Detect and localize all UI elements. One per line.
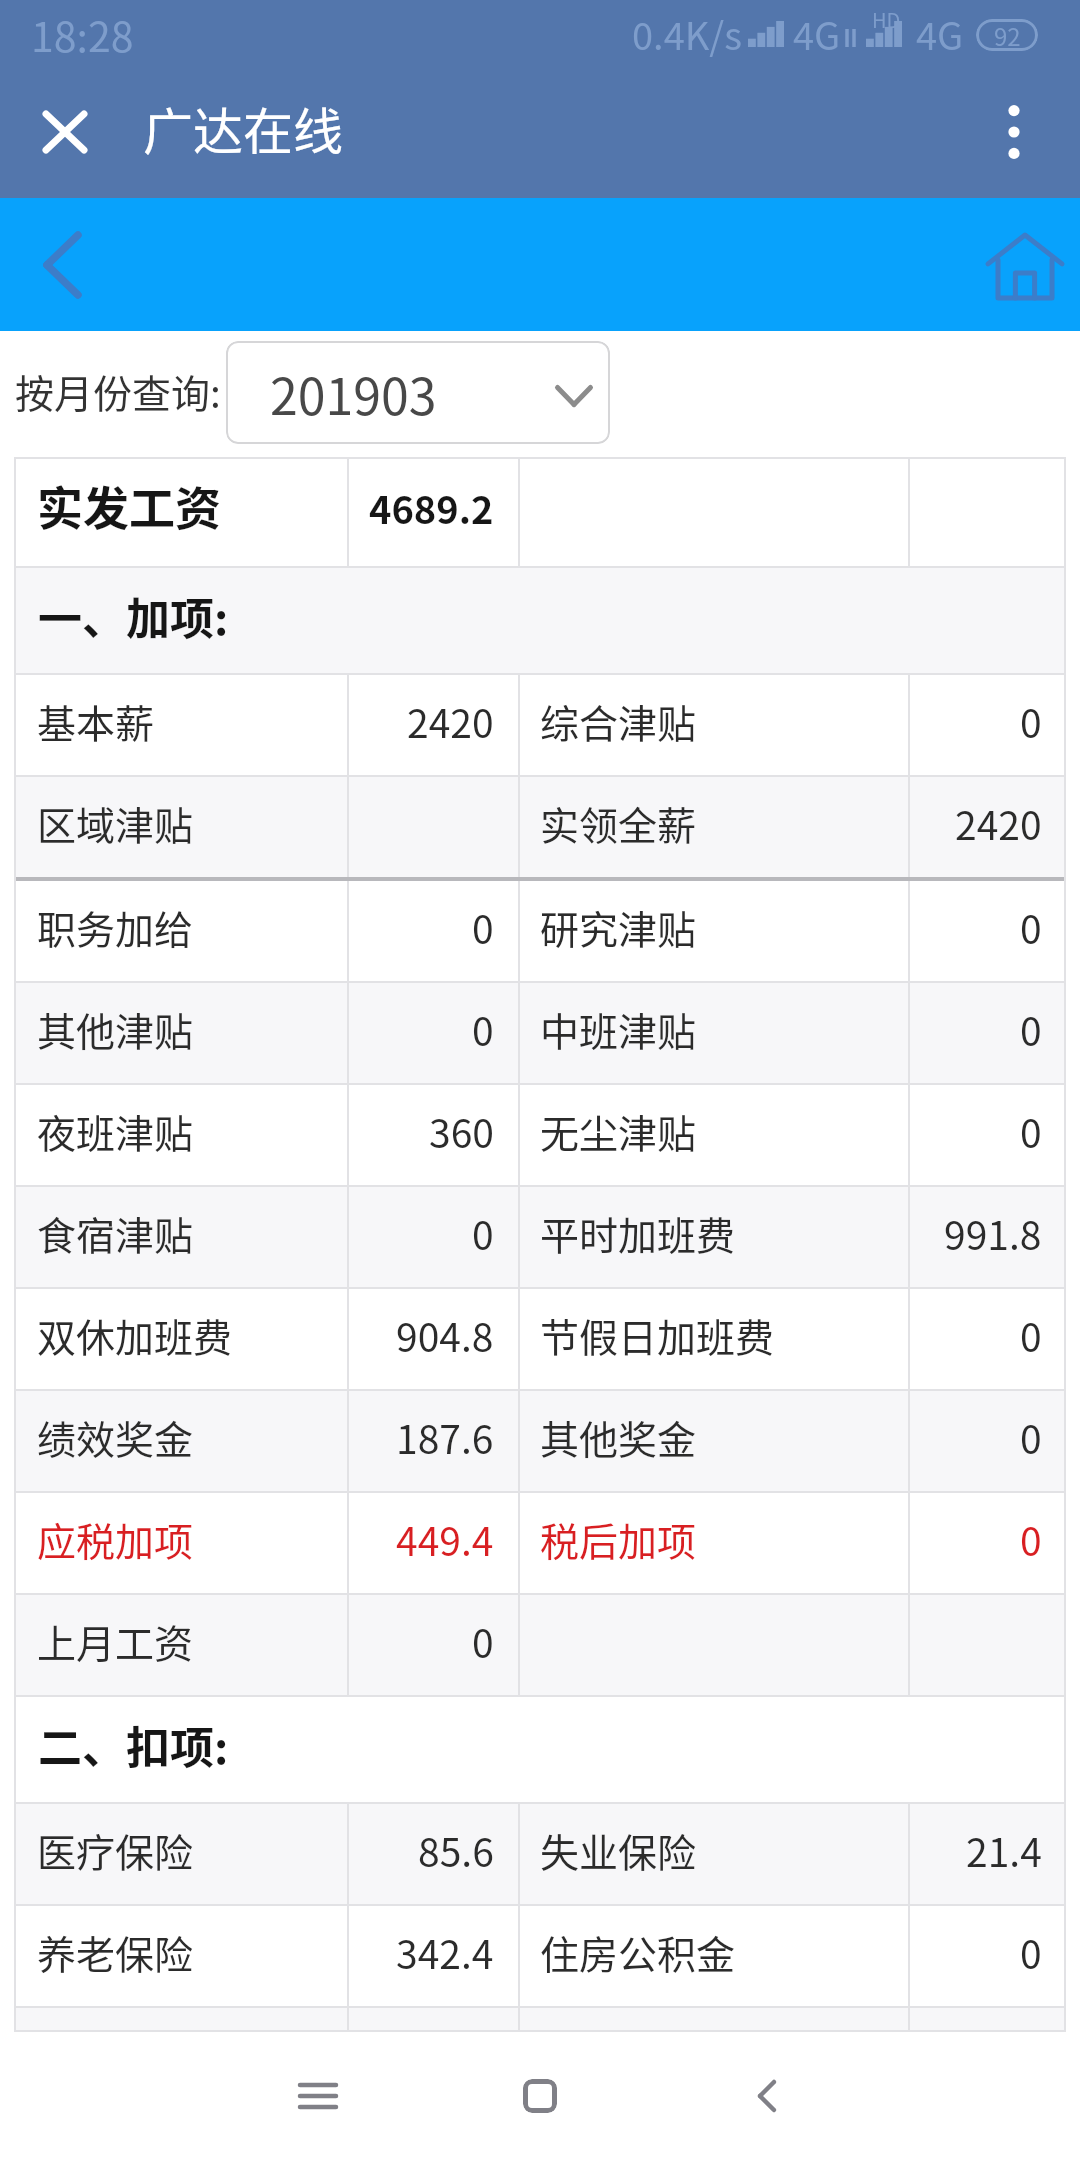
button[interactable]: Close	[18, 87, 112, 181]
staticText: 夜班津贴	[37, 1103, 194, 1159]
staticText: 上月工资	[37, 1613, 194, 1669]
staticText: 187.6	[396, 1409, 494, 1465]
staticText: 一、加项:	[38, 584, 229, 648]
staticText: 其他津贴	[37, 1001, 194, 1057]
staticText: 实发工资	[37, 472, 221, 539]
staticText: 其他奖金	[540, 1409, 697, 1465]
staticText: 绩效奖金	[37, 1409, 194, 1465]
staticText: 4689.2	[369, 480, 494, 535]
button[interactable]: Back	[10, 215, 110, 315]
staticText: 双休加班费	[37, 1307, 233, 1363]
staticText: 二、扣项:	[38, 1713, 229, 1777]
staticText: HD	[872, 5, 901, 34]
staticText: 0	[1020, 1409, 1042, 1465]
staticText: 失业保险	[540, 1822, 697, 1878]
staticText: 0	[472, 1001, 494, 1057]
staticText: 0	[472, 1205, 494, 1261]
staticText: 应税加项	[37, 1511, 194, 1567]
staticText: 2420	[955, 795, 1042, 851]
staticText: 342.4	[396, 1924, 494, 1980]
staticText: 0.4K/s	[632, 6, 742, 61]
staticText: 21.4	[966, 1822, 1042, 1878]
staticText: 节假日加班费	[540, 1307, 775, 1363]
staticText: 449.4	[396, 1511, 494, 1567]
button[interactable]: More options	[962, 82, 1066, 186]
button[interactable]: Home	[480, 2036, 600, 2156]
staticText: 职务加给	[37, 899, 194, 955]
staticText: 医疗保险	[37, 1822, 194, 1878]
button[interactable]: Recents	[258, 2036, 378, 2156]
staticText: 养老保险	[37, 1924, 194, 1980]
staticText: 0	[1020, 1001, 1042, 1057]
staticText: 研究津贴	[540, 899, 697, 955]
staticText: 0	[1020, 693, 1042, 749]
staticText: 85.6	[418, 1822, 494, 1878]
staticText: 区域津贴	[37, 795, 194, 851]
staticText: 实领全薪	[540, 795, 697, 851]
staticText: 按月份查询:	[15, 363, 221, 419]
staticText: 中班津贴	[540, 1001, 697, 1057]
staticText: 0	[1020, 899, 1042, 955]
staticText: 平时加班费	[540, 1205, 736, 1261]
staticText: 住房公积金	[540, 1924, 736, 1980]
button[interactable]: Back	[707, 2036, 827, 2156]
staticText: 18:28	[31, 4, 134, 63]
button[interactable]: Home	[968, 213, 1072, 317]
staticText: 360	[429, 1103, 494, 1159]
staticText: 991.8	[944, 1205, 1042, 1261]
staticText: 无尘津贴	[540, 1103, 697, 1159]
staticText: 2420	[407, 693, 494, 749]
staticText: 食宿津贴	[37, 1205, 194, 1261]
staticText: 201903	[270, 357, 437, 429]
staticText: 4G	[916, 6, 964, 61]
staticText: 0	[1020, 1924, 1042, 1980]
staticText: 0	[1020, 1307, 1042, 1363]
staticText: 税后加项	[540, 1511, 697, 1567]
staticText: 904.8	[396, 1307, 494, 1363]
staticText: 0	[472, 899, 494, 955]
staticText: 基本薪	[37, 693, 155, 749]
staticText: 0	[1020, 1511, 1042, 1567]
staticText: 4G	[793, 6, 841, 61]
staticText: 广达在线	[143, 92, 343, 164]
staticText: 0	[1020, 1103, 1042, 1159]
staticText: 综合津贴	[540, 693, 697, 749]
staticText: 92	[994, 19, 1021, 50]
button[interactable]: 201903	[226, 341, 610, 444]
staticText: 0	[472, 1613, 494, 1669]
